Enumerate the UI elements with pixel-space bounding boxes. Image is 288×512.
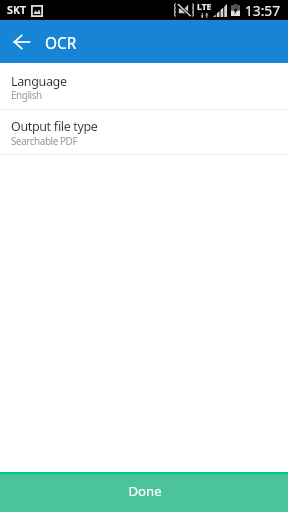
staticText: LTE <box>197 1 212 13</box>
staticText: English <box>11 88 42 101</box>
button[interactable]: Back <box>0 20 43 63</box>
staticText: 13:57 <box>245 1 280 20</box>
staticText: SKT <box>7 2 27 17</box>
button[interactable]: Output file type <box>0 110 288 154</box>
staticText: Searchable PDF <box>11 134 78 147</box>
staticText: OCR <box>45 33 77 54</box>
button[interactable]: Done <box>0 472 288 512</box>
button[interactable]: Language <box>0 63 288 109</box>
staticText: Done <box>128 482 162 500</box>
staticText: Language <box>11 73 67 90</box>
staticText: Output file type <box>11 118 98 135</box>
